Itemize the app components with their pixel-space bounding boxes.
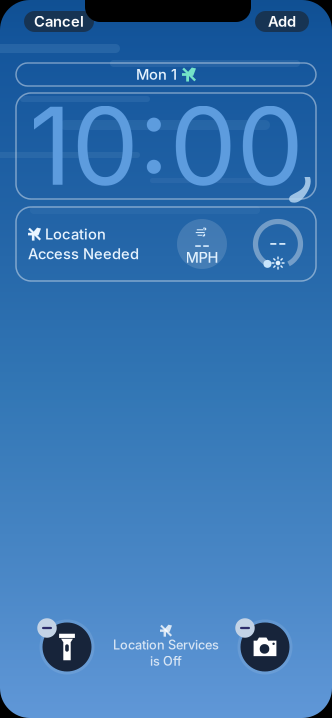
staticText: Location Services [113, 637, 219, 652]
staticText: -- [269, 232, 287, 254]
button[interactable]: Cancel [24, 11, 94, 32]
staticText: Mon 1 [136, 66, 177, 83]
button[interactable]: Remove Flashlight control [34, 614, 100, 680]
staticText: Cancel [34, 13, 84, 30]
button[interactable]: Add [255, 11, 309, 32]
staticText: MPH [185, 249, 218, 266]
staticText: Location [45, 225, 106, 243]
button[interactable]: Remove Camera control [232, 614, 298, 680]
staticText: Access Needed [28, 245, 139, 263]
staticText: 10:00 [28, 81, 303, 211]
staticText: -- [194, 234, 210, 255]
staticText: is Off [150, 653, 182, 669]
staticText: Add [268, 13, 296, 30]
